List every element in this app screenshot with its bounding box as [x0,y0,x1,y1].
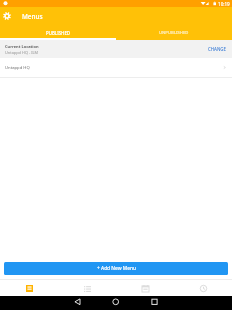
button[interactable]: Back [72,297,84,309]
staticText: UNPUBLISHED [159,30,189,36]
button[interactable]: CHANGE [202,42,232,56]
staticText: Menus [22,12,43,21]
button[interactable]: Events [116,280,174,296]
button[interactable]: Lists [58,280,116,296]
button[interactable]: Home [110,297,122,309]
button[interactable]: Recents [149,297,161,309]
button[interactable]: Untappd HQ [0,58,232,77]
button[interactable]: UNPUBLISHED [116,25,232,40]
button[interactable]: PUBLISHED [0,25,116,40]
button[interactable]: Settings [2,11,12,21]
button[interactable]: + Add New Menu [4,262,228,275]
button[interactable]: History [174,280,232,296]
staticText: 10:19 [218,1,230,7]
staticText: Current Location [5,44,39,49]
staticText: PUBLISHED [46,30,71,36]
staticText: Untappd HQ - ILM [5,50,39,55]
staticText: + Add New Menu [97,265,136,272]
button[interactable]: Menus [0,280,58,296]
staticText: CHANGE [208,46,226,52]
staticText: Untappd HQ [5,65,30,71]
